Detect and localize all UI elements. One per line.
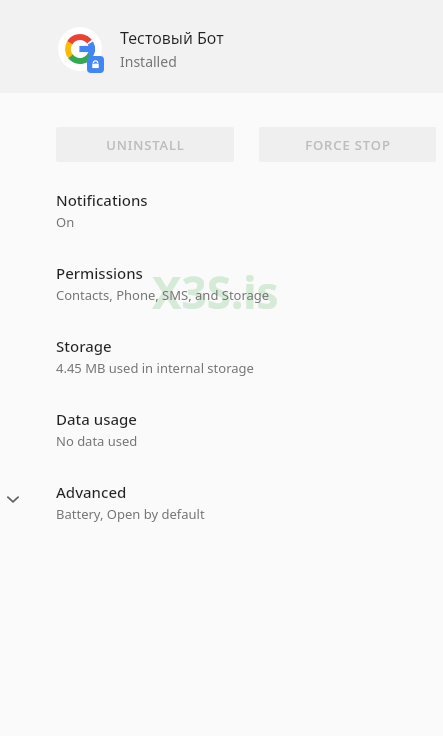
button[interactable]: FORCE STOP xyxy=(259,127,436,162)
staticText: Storage xyxy=(56,336,112,356)
staticText: Contacts, Phone, SMS, and Storage xyxy=(56,286,270,304)
staticText: Notifications xyxy=(56,190,148,210)
staticText: 4.45 MB used in internal storage xyxy=(56,359,254,377)
staticText: Тестовый Бот xyxy=(120,27,224,49)
staticText: On xyxy=(56,213,75,231)
staticText: Data usage xyxy=(56,409,137,429)
staticText: Battery, Open by default xyxy=(56,505,205,523)
button[interactable]: Data usage xyxy=(0,409,443,465)
staticText: UNINSTALL xyxy=(106,136,185,154)
staticText: Advanced xyxy=(56,482,127,502)
other: Expand advanced xyxy=(2,488,24,510)
staticText: FORCE STOP xyxy=(305,136,391,154)
staticText: Installed xyxy=(120,52,177,71)
button[interactable]: Notifications xyxy=(0,190,443,246)
button[interactable]: Permissions xyxy=(0,263,443,319)
button[interactable]: Storage xyxy=(0,336,443,392)
button[interactable]: Expand advanced xyxy=(0,482,443,538)
staticText: No data used xyxy=(56,432,138,450)
staticText: X3S.is xyxy=(152,262,279,322)
staticText: Permissions xyxy=(56,263,143,283)
button[interactable]: Тестовый Бот xyxy=(58,26,224,72)
button[interactable]: UNINSTALL xyxy=(56,127,234,162)
